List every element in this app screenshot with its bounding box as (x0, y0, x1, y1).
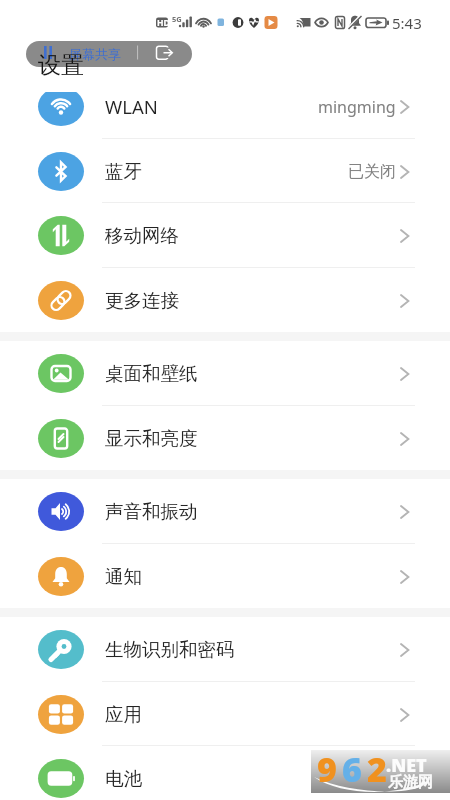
staticText: 移动网络 (105, 224, 179, 247)
staticText: .NET (386, 753, 427, 778)
button[interactable]: 应用 (0, 682, 450, 747)
button[interactable]: 屏幕共享 (26, 41, 192, 67)
staticText: 屏幕共享 (69, 46, 121, 62)
staticText: 桌面和壁纸 (105, 362, 198, 385)
button[interactable]: WLAN (0, 74, 450, 139)
button[interactable]: 更多连接 (0, 268, 450, 333)
staticText: 6 (342, 746, 362, 789)
button[interactable]: 桌面和壁纸 (0, 341, 450, 406)
staticText: 通知 (105, 565, 142, 588)
staticText: 电池 (105, 767, 142, 790)
staticText: 5G (172, 14, 182, 24)
button[interactable]: 电池 (0, 746, 450, 800)
staticText: WLAN (105, 94, 158, 119)
staticText: 声音和振动 (105, 500, 198, 523)
staticText: 5:43 (392, 13, 422, 33)
staticText: 生物识别和密码 (105, 638, 235, 661)
staticText: 蓝牙 (105, 160, 142, 183)
button[interactable]: 通知 (0, 544, 450, 609)
button[interactable]: 显示和亮度 (0, 406, 450, 471)
staticText: HD (157, 17, 170, 29)
staticText: 乐游网 (388, 773, 433, 792)
staticText: 已关闭 (348, 162, 396, 182)
staticText: 设置 (38, 51, 84, 80)
button[interactable]: 生物识别和密码 (0, 617, 450, 682)
button[interactable]: 声音和振动 (0, 479, 450, 544)
staticText: mingming (318, 96, 396, 118)
staticText: 9 (317, 746, 337, 789)
staticText: 显示和亮度 (105, 427, 198, 450)
staticText: 2 (367, 746, 387, 789)
staticText: 更多连接 (105, 289, 179, 312)
staticText: 应用 (105, 703, 142, 726)
button[interactable]: 蓝牙 (0, 139, 450, 204)
button[interactable]: 移动网络 (0, 203, 450, 268)
